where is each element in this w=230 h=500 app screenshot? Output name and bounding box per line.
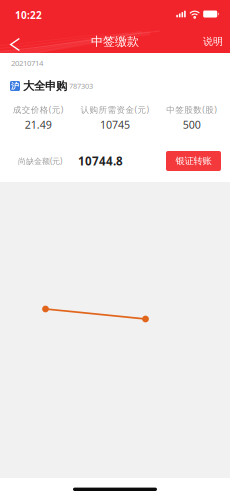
staticText: 认购所需资金(元) [80, 104, 149, 115]
staticText: 银证转账 [175, 155, 211, 167]
staticText: 沪 [11, 81, 19, 91]
staticText: 大全申购 [23, 79, 67, 93]
staticText: 10744.8 [78, 153, 123, 169]
staticText: 成交价格(元) [13, 104, 64, 115]
staticText: 尚缺金额(元) [18, 156, 62, 166]
staticText: 中签缴款 [91, 34, 139, 49]
staticText: 说明 [203, 35, 223, 48]
staticText: 10:22 [15, 8, 42, 22]
staticText: 10745 [100, 117, 130, 132]
staticText: 20210714 [11, 58, 43, 68]
button[interactable]: Back [4, 25, 26, 58]
staticText: 787303 [69, 81, 93, 91]
staticText: 中签股数(股) [166, 104, 217, 115]
staticText: 21.49 [25, 117, 52, 132]
staticText: 500 [183, 117, 201, 132]
button[interactable]: 说明 [200, 28, 226, 55]
button[interactable]: 银证转账 [166, 151, 221, 171]
